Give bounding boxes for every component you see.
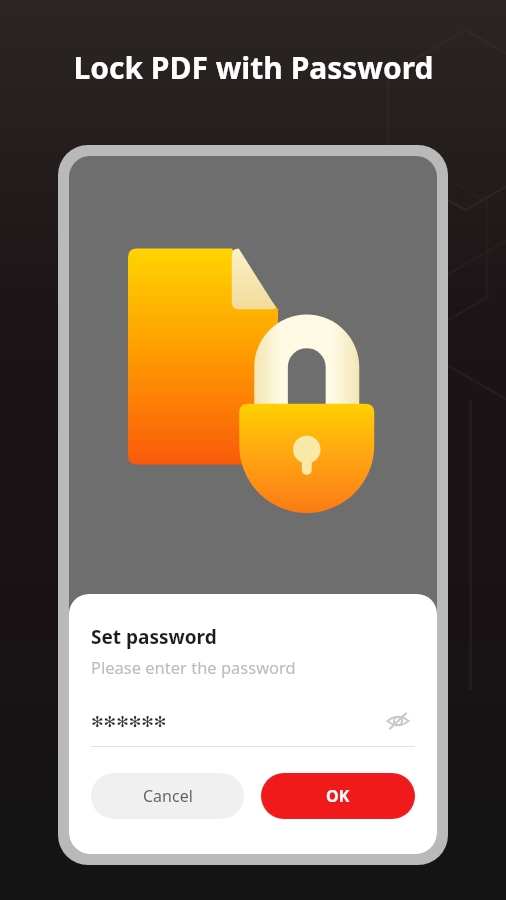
button[interactable]: OK	[261, 773, 415, 819]
staticText: Cancel	[143, 785, 193, 807]
staticText: OK	[326, 785, 350, 807]
button[interactable]: Cancel	[91, 773, 244, 819]
staticText: ✻✻✻✻✻✻	[91, 713, 167, 730]
staticText: Set password	[91, 624, 217, 650]
staticText: Lock PDF with Password	[73, 47, 434, 88]
staticText: Please enter the password	[91, 656, 296, 678]
button[interactable]: Show password	[381, 704, 415, 738]
